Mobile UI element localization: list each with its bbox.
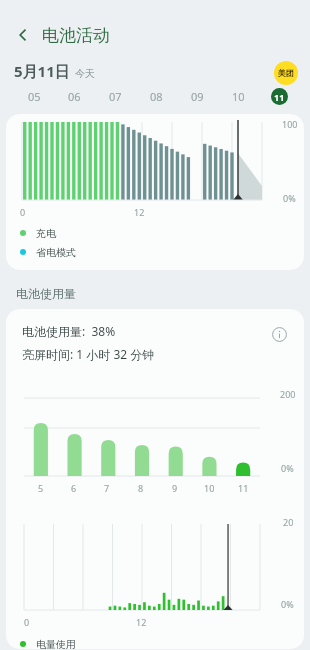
staticText: 07: [109, 89, 122, 104]
staticText: 充电: [36, 227, 56, 240]
staticText: 100: [282, 118, 298, 130]
staticText: 今天: [75, 67, 95, 80]
button[interactable]: 省电模式: [20, 245, 304, 259]
button[interactable]: 电量使用: [20, 638, 304, 649]
staticText: 电量使用: [36, 638, 76, 649]
staticText: 电池活动: [42, 25, 110, 46]
button[interactable]: Meituan app: [274, 61, 298, 85]
button[interactable]: 充电: [20, 226, 304, 240]
button[interactable]: Day 11 selected: [271, 88, 288, 105]
staticText: 电池使用量: 38%: [22, 323, 116, 339]
staticText: 11: [274, 91, 285, 103]
staticText: 11: [238, 482, 249, 494]
staticText: 05: [28, 89, 41, 104]
staticText: 省电模式: [36, 246, 76, 259]
staticText: 10: [232, 89, 245, 104]
staticText: 09: [191, 89, 204, 104]
staticText: 10: [204, 482, 215, 494]
button[interactable]: 100: [6, 114, 304, 270]
staticText: 200: [280, 388, 296, 400]
button[interactable]: Back: [10, 22, 36, 48]
staticText: 5月11日: [14, 61, 70, 81]
staticText: 9: [172, 482, 178, 494]
staticText: 0: [20, 206, 26, 218]
staticText: 亮屏时间: 1 小时 32 分钟: [22, 346, 155, 362]
staticText: 5: [38, 482, 44, 494]
staticText: 06: [68, 89, 81, 104]
staticText: 08: [150, 89, 163, 104]
staticText: 电池使用量: [16, 286, 76, 301]
staticText: 美团: [278, 68, 294, 78]
staticText: 8: [138, 482, 144, 494]
staticText: 12: [136, 616, 147, 628]
staticText: 20: [283, 516, 294, 528]
staticText: 0%: [281, 462, 294, 474]
staticText: 0: [24, 616, 30, 628]
button[interactable]: Info: [268, 323, 290, 345]
staticText: 6: [71, 482, 77, 494]
staticText: 0%: [281, 598, 294, 610]
staticText: 12: [134, 206, 145, 218]
staticText: 0%: [283, 192, 296, 204]
staticText: 7: [104, 482, 110, 494]
